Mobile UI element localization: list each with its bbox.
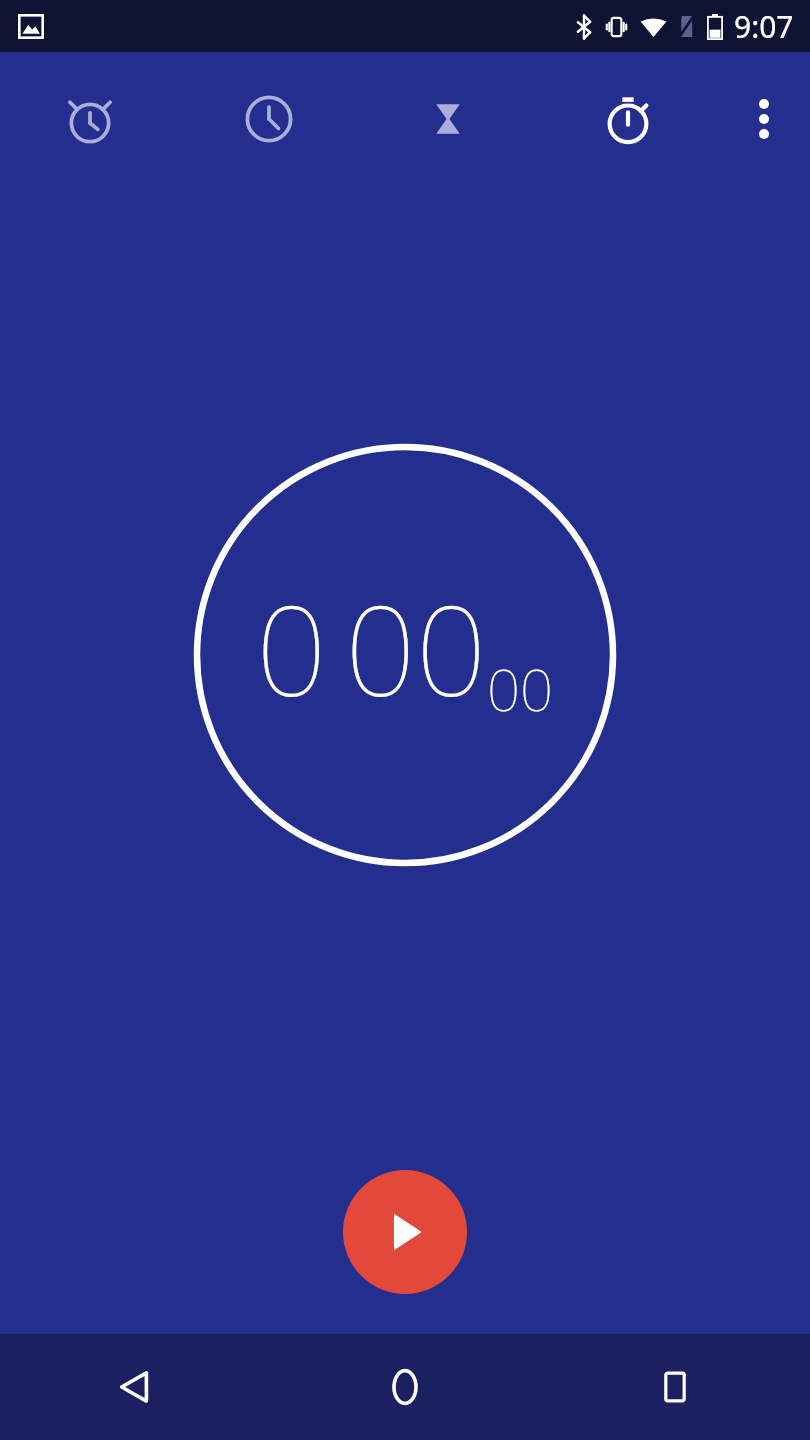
button[interactable]: Stopwatch xyxy=(538,52,718,185)
button[interactable]: Alarm xyxy=(0,52,179,185)
staticText: 0 xyxy=(256,563,327,732)
button[interactable]: Clock xyxy=(179,52,358,185)
button[interactable]: Start xyxy=(343,1170,467,1294)
button[interactable]: More options xyxy=(718,52,810,185)
button[interactable]: Home xyxy=(270,1334,540,1440)
staticText: 00 xyxy=(345,563,487,732)
staticText: 9:07 xyxy=(734,6,794,47)
button[interactable]: Timer xyxy=(358,52,538,185)
staticText: 00 xyxy=(487,649,554,728)
button[interactable]: Back xyxy=(0,1334,270,1440)
button[interactable]: Recents xyxy=(540,1334,810,1440)
